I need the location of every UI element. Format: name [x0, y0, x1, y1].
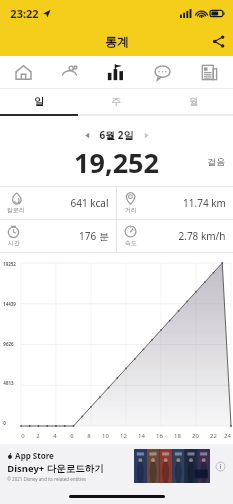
staticText: 걸음 [207, 156, 225, 167]
button[interactable]: Chat [139, 56, 186, 88]
staticText: 일 [34, 95, 44, 108]
staticText: App Store [15, 450, 54, 461]
staticText: 22 [210, 432, 217, 440]
staticText: © 2021 Disney and its related entities [7, 476, 86, 482]
staticText: 주 [111, 95, 121, 108]
button[interactable]: 시간 [0, 220, 116, 252]
button[interactable]: 주 [77, 89, 155, 114]
staticText: 속도 [125, 239, 137, 247]
staticText: 통계 [105, 34, 129, 49]
button[interactable]: Home [0, 56, 46, 88]
staticText: 14 [138, 432, 145, 440]
staticText: 12 [120, 432, 127, 440]
staticText: 4813 [3, 380, 14, 386]
staticText: 23:22 [10, 6, 39, 21]
button[interactable]: Ad info [214, 460, 226, 472]
staticText: 20 [192, 432, 199, 440]
button[interactable]: Statistics [92, 56, 139, 88]
staticText: 11.74 km [183, 196, 226, 210]
button[interactable]: 거리 [117, 187, 233, 219]
staticText: 16 [156, 432, 163, 440]
staticText: 24 [224, 432, 231, 440]
staticText: 0 [21, 432, 25, 440]
staticText: 641 kcal [70, 196, 109, 210]
staticText: 8 [87, 432, 91, 440]
staticText: 176 분 [79, 229, 109, 243]
button[interactable]: 일 [0, 89, 77, 114]
staticText: 6월 2일 [99, 128, 134, 142]
button[interactable]: Next day [138, 127, 154, 143]
staticText: 칼로리 [7, 206, 25, 214]
staticText: 2.78 km/h [178, 229, 226, 243]
staticText: 19252 [3, 261, 16, 267]
staticText: 4 [53, 432, 57, 440]
staticText: 거리 [125, 206, 137, 214]
button[interactable]: Previous day [79, 127, 95, 143]
staticText: 19,252 [74, 144, 159, 178]
button[interactable]: Share [203, 26, 233, 56]
staticText: 2 [36, 432, 40, 440]
staticText: 9626 [3, 341, 14, 347]
staticText: 월 [189, 95, 199, 108]
button[interactable]: App Store [0, 444, 233, 488]
button[interactable]: Friends [46, 56, 92, 88]
staticText: 18 [174, 432, 181, 440]
button[interactable]: News [186, 56, 233, 88]
staticText: 10 [102, 432, 109, 440]
staticText: 14439 [3, 301, 16, 307]
staticText: 시간 [8, 239, 20, 247]
button[interactable]: 월 [155, 89, 233, 114]
button[interactable]: 칼로리 [0, 187, 116, 219]
button[interactable]: 속도 [117, 220, 233, 252]
staticText: 0 [3, 420, 6, 426]
staticText: Disney+ 다운로드하기 [7, 462, 104, 475]
staticText: 6 [70, 432, 74, 440]
